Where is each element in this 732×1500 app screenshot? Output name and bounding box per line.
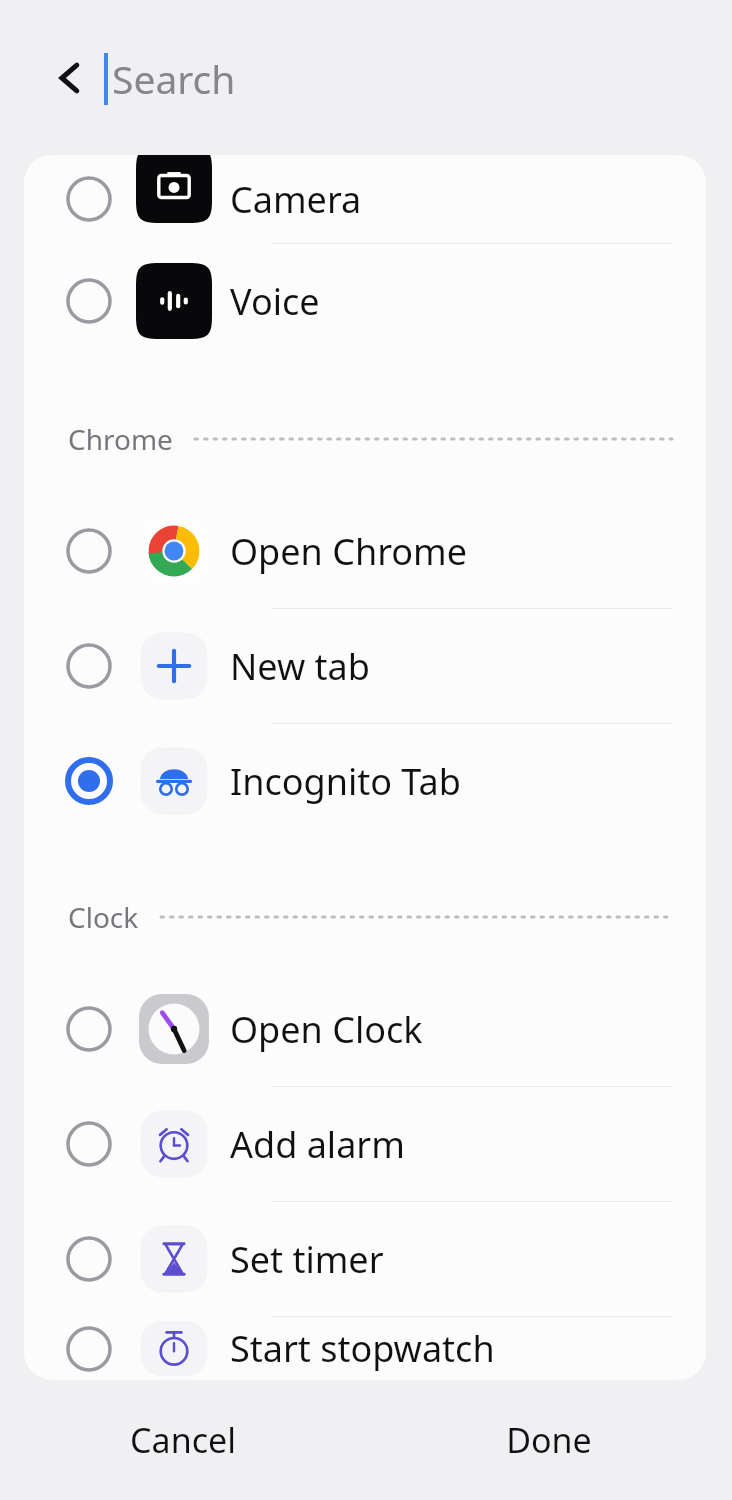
button[interactable]: Open Chrome	[24, 494, 706, 608]
button[interactable]: Done	[366, 1390, 732, 1490]
staticText: Add alarm	[230, 1120, 405, 1169]
staticText: Done	[506, 1417, 592, 1463]
staticText: Camera	[230, 175, 362, 224]
staticText: Cancel	[130, 1417, 236, 1463]
button[interactable]: New tab	[24, 609, 706, 723]
staticText: Search	[112, 52, 236, 105]
staticText: Clock	[68, 898, 139, 936]
staticText: Open Chrome	[230, 527, 468, 576]
staticText: Start stopwatch	[230, 1324, 495, 1373]
staticText: Set timer	[230, 1235, 384, 1284]
staticText: New tab	[230, 642, 370, 691]
staticText: Voice	[230, 277, 320, 326]
button[interactable]: Back	[40, 48, 100, 108]
button[interactable]: Camera	[24, 155, 706, 243]
staticText: Open Clock	[230, 1005, 423, 1054]
button[interactable]: Cancel	[0, 1390, 366, 1490]
button[interactable]: Voice	[24, 244, 706, 358]
staticText: Chrome	[68, 420, 173, 458]
button[interactable]: Add alarm	[24, 1087, 706, 1201]
staticText: Incognito Tab	[230, 757, 461, 806]
button[interactable]: Open Clock	[24, 972, 706, 1086]
button[interactable]: Set timer	[24, 1202, 706, 1316]
button[interactable]: Start stopwatch	[24, 1317, 706, 1380]
button[interactable]: Incognito Tab	[24, 724, 706, 838]
button[interactable]: Search	[104, 33, 732, 123]
